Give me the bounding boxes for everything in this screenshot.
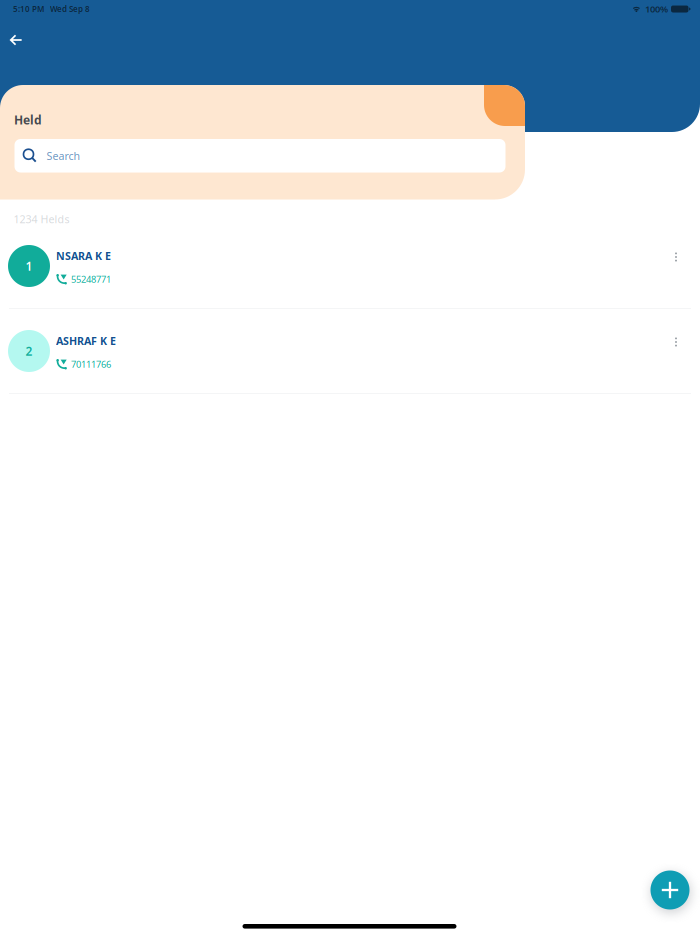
staticText: 1234 Helds [13,212,69,226]
button[interactable]: Search [14,139,505,172]
button[interactable]: 2 [0,309,700,393]
staticText: Search [46,149,80,163]
button[interactable]: Back [0,25,34,55]
staticText: Held [14,112,42,128]
staticText: NSARA K E [56,249,111,263]
button[interactable]: More options [662,242,690,272]
staticText: 2 [25,343,32,359]
staticText: Wed Sep 8 [50,4,90,14]
button[interactable]: 1 [0,224,700,308]
staticText: 70111766 [71,358,111,370]
staticText: 55248771 [71,273,111,285]
staticText: ASHRAF K E [56,334,116,348]
button[interactable]: Add [650,870,689,909]
staticText: 100% [645,3,668,15]
button[interactable]: More options [662,327,690,357]
staticText: 1 [25,258,32,274]
staticText: 5:10 PM [13,4,44,14]
